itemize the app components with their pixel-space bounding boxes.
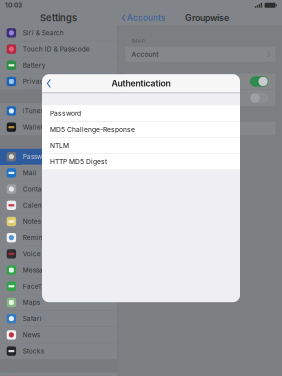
staticText: Reminders <box>23 234 56 242</box>
button[interactable]: Wallet <box>0 119 117 135</box>
staticText: Notes <box>23 217 41 225</box>
button[interactable]: Messages <box>0 262 117 278</box>
button[interactable]: Accounts <box>117 10 170 25</box>
button[interactable]: Mail <box>0 165 117 181</box>
button[interactable]: Account <box>125 47 275 62</box>
button[interactable]: Calendar <box>0 197 117 214</box>
button[interactable]: Safari <box>0 311 117 327</box>
staticText: HTTP MD5 Digest <box>50 157 107 166</box>
button[interactable]: NTLM <box>42 138 240 153</box>
button[interactable]: Notes <box>0 214 117 230</box>
staticText: Contacts <box>23 185 51 193</box>
staticText: News <box>23 331 40 339</box>
button[interactable]: Siri & Search <box>0 25 117 41</box>
button[interactable]: Contacts <box>0 181 117 197</box>
button[interactable]: Passwords <box>0 149 117 165</box>
button[interactable]: MD5 Challenge-Response <box>42 122 240 137</box>
staticText: IMAP <box>131 38 144 44</box>
button[interactable]: HTTP MD5 Digest <box>42 154 240 169</box>
staticText: Siri & Search <box>23 29 64 37</box>
staticText: iTunes <box>23 107 44 115</box>
staticText: FaceTime <box>23 282 54 290</box>
staticText: Account <box>131 50 158 58</box>
staticText: Maps <box>23 298 40 306</box>
staticText: Password <box>50 109 81 117</box>
staticText: NTLM <box>50 141 69 150</box>
staticText: Stocks <box>23 347 44 355</box>
staticText: MD5 Challenge-Response <box>50 125 135 134</box>
staticText: Passwords <box>23 153 55 161</box>
button[interactable]: Privacy <box>0 74 117 90</box>
button[interactable]: iTunes <box>0 103 117 119</box>
button[interactable]: Password <box>42 105 240 121</box>
button[interactable]: Battery <box>0 57 117 74</box>
button[interactable]: Stocks <box>0 343 117 359</box>
button[interactable]: Touch ID & Passcode <box>0 41 117 57</box>
staticText: Privacy <box>23 77 48 85</box>
staticText: Authentication <box>111 78 170 89</box>
button[interactable]: News <box>0 327 117 343</box>
button[interactable]: Reminders <box>0 230 117 246</box>
staticText: Touch ID & Passcode <box>23 45 90 53</box>
staticText: Messages <box>23 266 54 274</box>
button[interactable]: Maps <box>0 295 117 311</box>
button[interactable]: Allow insecure authentication <box>125 90 275 106</box>
staticText: Mail <box>23 169 37 177</box>
staticText: Voice Memos <box>23 250 66 258</box>
button[interactable]: Use SSL <box>125 73 275 89</box>
staticText: Accounts <box>127 13 165 23</box>
staticText: Groupwise <box>185 12 229 23</box>
button[interactable]: FaceTime <box>0 278 117 295</box>
staticText: Calendar <box>23 201 52 209</box>
staticText: Battery <box>23 61 46 69</box>
button[interactable]: Back <box>42 74 58 93</box>
staticText: Wallet <box>23 123 43 131</box>
button[interactable]: Voice Memos <box>0 246 117 262</box>
staticText: Safari <box>23 315 42 323</box>
staticText: 10:03 <box>5 1 22 9</box>
staticText: Settings <box>40 12 77 23</box>
